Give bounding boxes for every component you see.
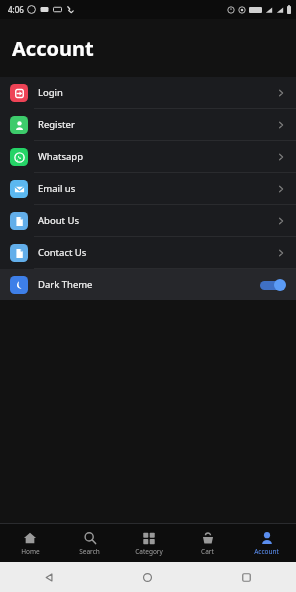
staticText: 4:06 <box>8 4 24 15</box>
button[interactable]: Login <box>0 77 296 108</box>
button[interactable]: Register <box>0 109 296 140</box>
staticText: Whatsapp <box>38 150 84 163</box>
staticText: Register <box>38 118 75 131</box>
button[interactable]: Category <box>119 524 178 562</box>
staticText: Account <box>12 35 94 62</box>
button[interactable]: Home <box>98 562 197 592</box>
staticText: About Us <box>38 214 79 227</box>
button[interactable]: Dark Theme toggle <box>260 279 286 291</box>
button[interactable]: Account <box>237 524 296 562</box>
staticText: Account <box>254 547 279 556</box>
staticText: Search <box>79 547 100 556</box>
button[interactable]: Email us <box>0 173 296 204</box>
button[interactable]: Home <box>0 524 60 562</box>
button[interactable]: Whatsapp <box>0 141 296 172</box>
staticText: Contact Us <box>38 246 87 259</box>
button[interactable]: Search <box>60 524 119 562</box>
staticText: Dark Theme <box>38 278 93 291</box>
staticText: Cart <box>201 547 214 556</box>
button[interactable]: About Us <box>0 205 296 236</box>
button[interactable]: Cart <box>178 524 237 562</box>
button[interactable]: Contact Us <box>0 237 296 268</box>
staticText: Category <box>135 547 163 556</box>
button[interactable]: Recents <box>197 562 296 592</box>
staticText: Email us <box>38 182 76 195</box>
button[interactable]: Dark Theme <box>0 269 296 300</box>
button[interactable]: Back <box>0 562 98 592</box>
staticText: Login <box>38 86 63 99</box>
staticText: Home <box>21 547 40 556</box>
